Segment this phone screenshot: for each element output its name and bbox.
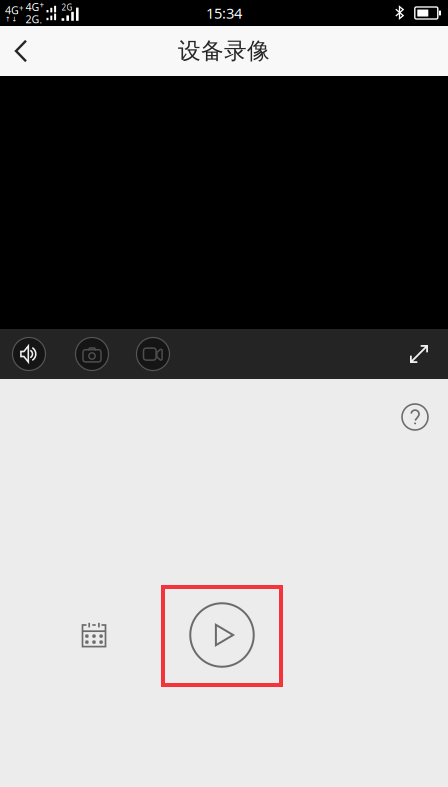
button[interactable]: Calendar <box>70 611 118 659</box>
staticText: + <box>19 3 24 14</box>
button[interactable]: Help <box>393 395 437 439</box>
button[interactable]: Full screen <box>399 329 439 379</box>
staticText: . <box>39 14 42 26</box>
staticText: 4G <box>25 0 39 14</box>
button[interactable]: Record <box>131 329 175 379</box>
staticText: 设备录像 <box>178 37 270 65</box>
staticText: ↓ <box>11 15 17 23</box>
staticText: 15:34 <box>206 3 242 23</box>
button[interactable]: Back <box>0 26 42 76</box>
button[interactable]: Mute <box>7 329 51 379</box>
staticText: 2G <box>25 12 39 26</box>
staticText: + <box>39 0 44 10</box>
staticText: 2G <box>62 2 73 13</box>
button[interactable]: Snapshot <box>70 329 114 379</box>
staticText: ↑ <box>5 15 11 23</box>
staticText: 4G <box>5 3 19 17</box>
button[interactable]: Play recording <box>161 585 283 687</box>
